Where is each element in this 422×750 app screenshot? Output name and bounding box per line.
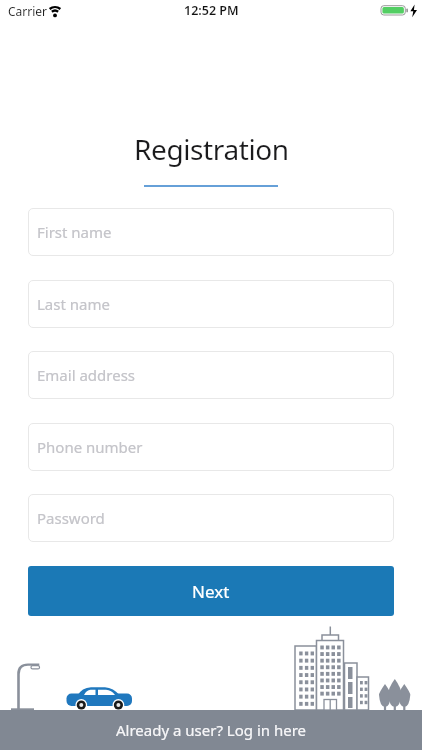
button[interactable]: Already a user? Log in here [0,710,422,750]
button[interactable]: Email address [28,351,394,399]
staticText: 12:52 PM [184,2,239,19]
staticText: Carrier [8,3,48,19]
staticText: Phone number [37,437,143,457]
staticText: Last name [37,294,110,314]
button[interactable]: First name [28,208,394,256]
button[interactable]: Next [28,566,394,616]
staticText: Already a user? Log in here [116,720,307,740]
staticText: Registration [134,130,289,168]
button[interactable]: Phone number [28,423,394,471]
staticText: Password [37,508,105,528]
button[interactable]: Last name [28,280,394,328]
staticText: Next [192,580,230,603]
staticText: First name [37,222,112,242]
button[interactable]: Password [28,494,394,542]
staticText: Email address [37,365,136,385]
